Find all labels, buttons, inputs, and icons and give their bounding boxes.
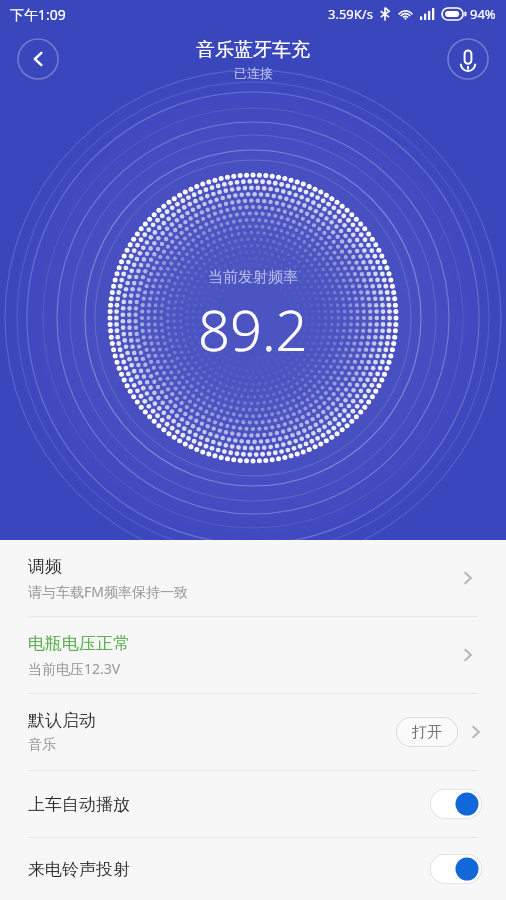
button[interactable]: 来电铃声投射 bbox=[0, 838, 506, 900]
button[interactable]: 上车自动播放 bbox=[430, 789, 482, 819]
staticText: 音乐 bbox=[28, 736, 56, 754]
button[interactable]: 来电铃声投射 bbox=[430, 854, 482, 884]
staticText: 音乐蓝牙车充 bbox=[196, 38, 310, 62]
staticText: 打开 bbox=[412, 723, 442, 742]
staticText: 来电铃声投射 bbox=[28, 859, 430, 880]
staticText: 请与车载FM频率保持一致 bbox=[28, 582, 188, 601]
staticText: 电瓶电压正常 bbox=[28, 633, 130, 654]
button[interactable]: 默认启动 bbox=[0, 694, 506, 770]
staticText: 默认启动 bbox=[28, 710, 96, 731]
staticText: 94% bbox=[470, 5, 496, 23]
button[interactable]: 调频 bbox=[0, 540, 506, 616]
staticText: 已连接 bbox=[234, 65, 273, 81]
button[interactable]: 电瓶电压正常 bbox=[0, 617, 506, 693]
staticText: 3.59K/s bbox=[328, 5, 373, 23]
button[interactable]: 上车自动播放 bbox=[0, 771, 506, 837]
staticText: 89.2 bbox=[198, 291, 308, 367]
staticText: 上车自动播放 bbox=[28, 794, 430, 815]
staticText: 下午1:09 bbox=[10, 5, 66, 24]
button[interactable]: Back bbox=[16, 37, 60, 81]
staticText: 当前发射频率 bbox=[208, 268, 298, 287]
button[interactable]: 打开 bbox=[396, 717, 458, 747]
button[interactable]: Voice input bbox=[446, 37, 490, 81]
staticText: 当前电压12.3V bbox=[28, 659, 121, 678]
staticText: 调频 bbox=[28, 556, 62, 577]
